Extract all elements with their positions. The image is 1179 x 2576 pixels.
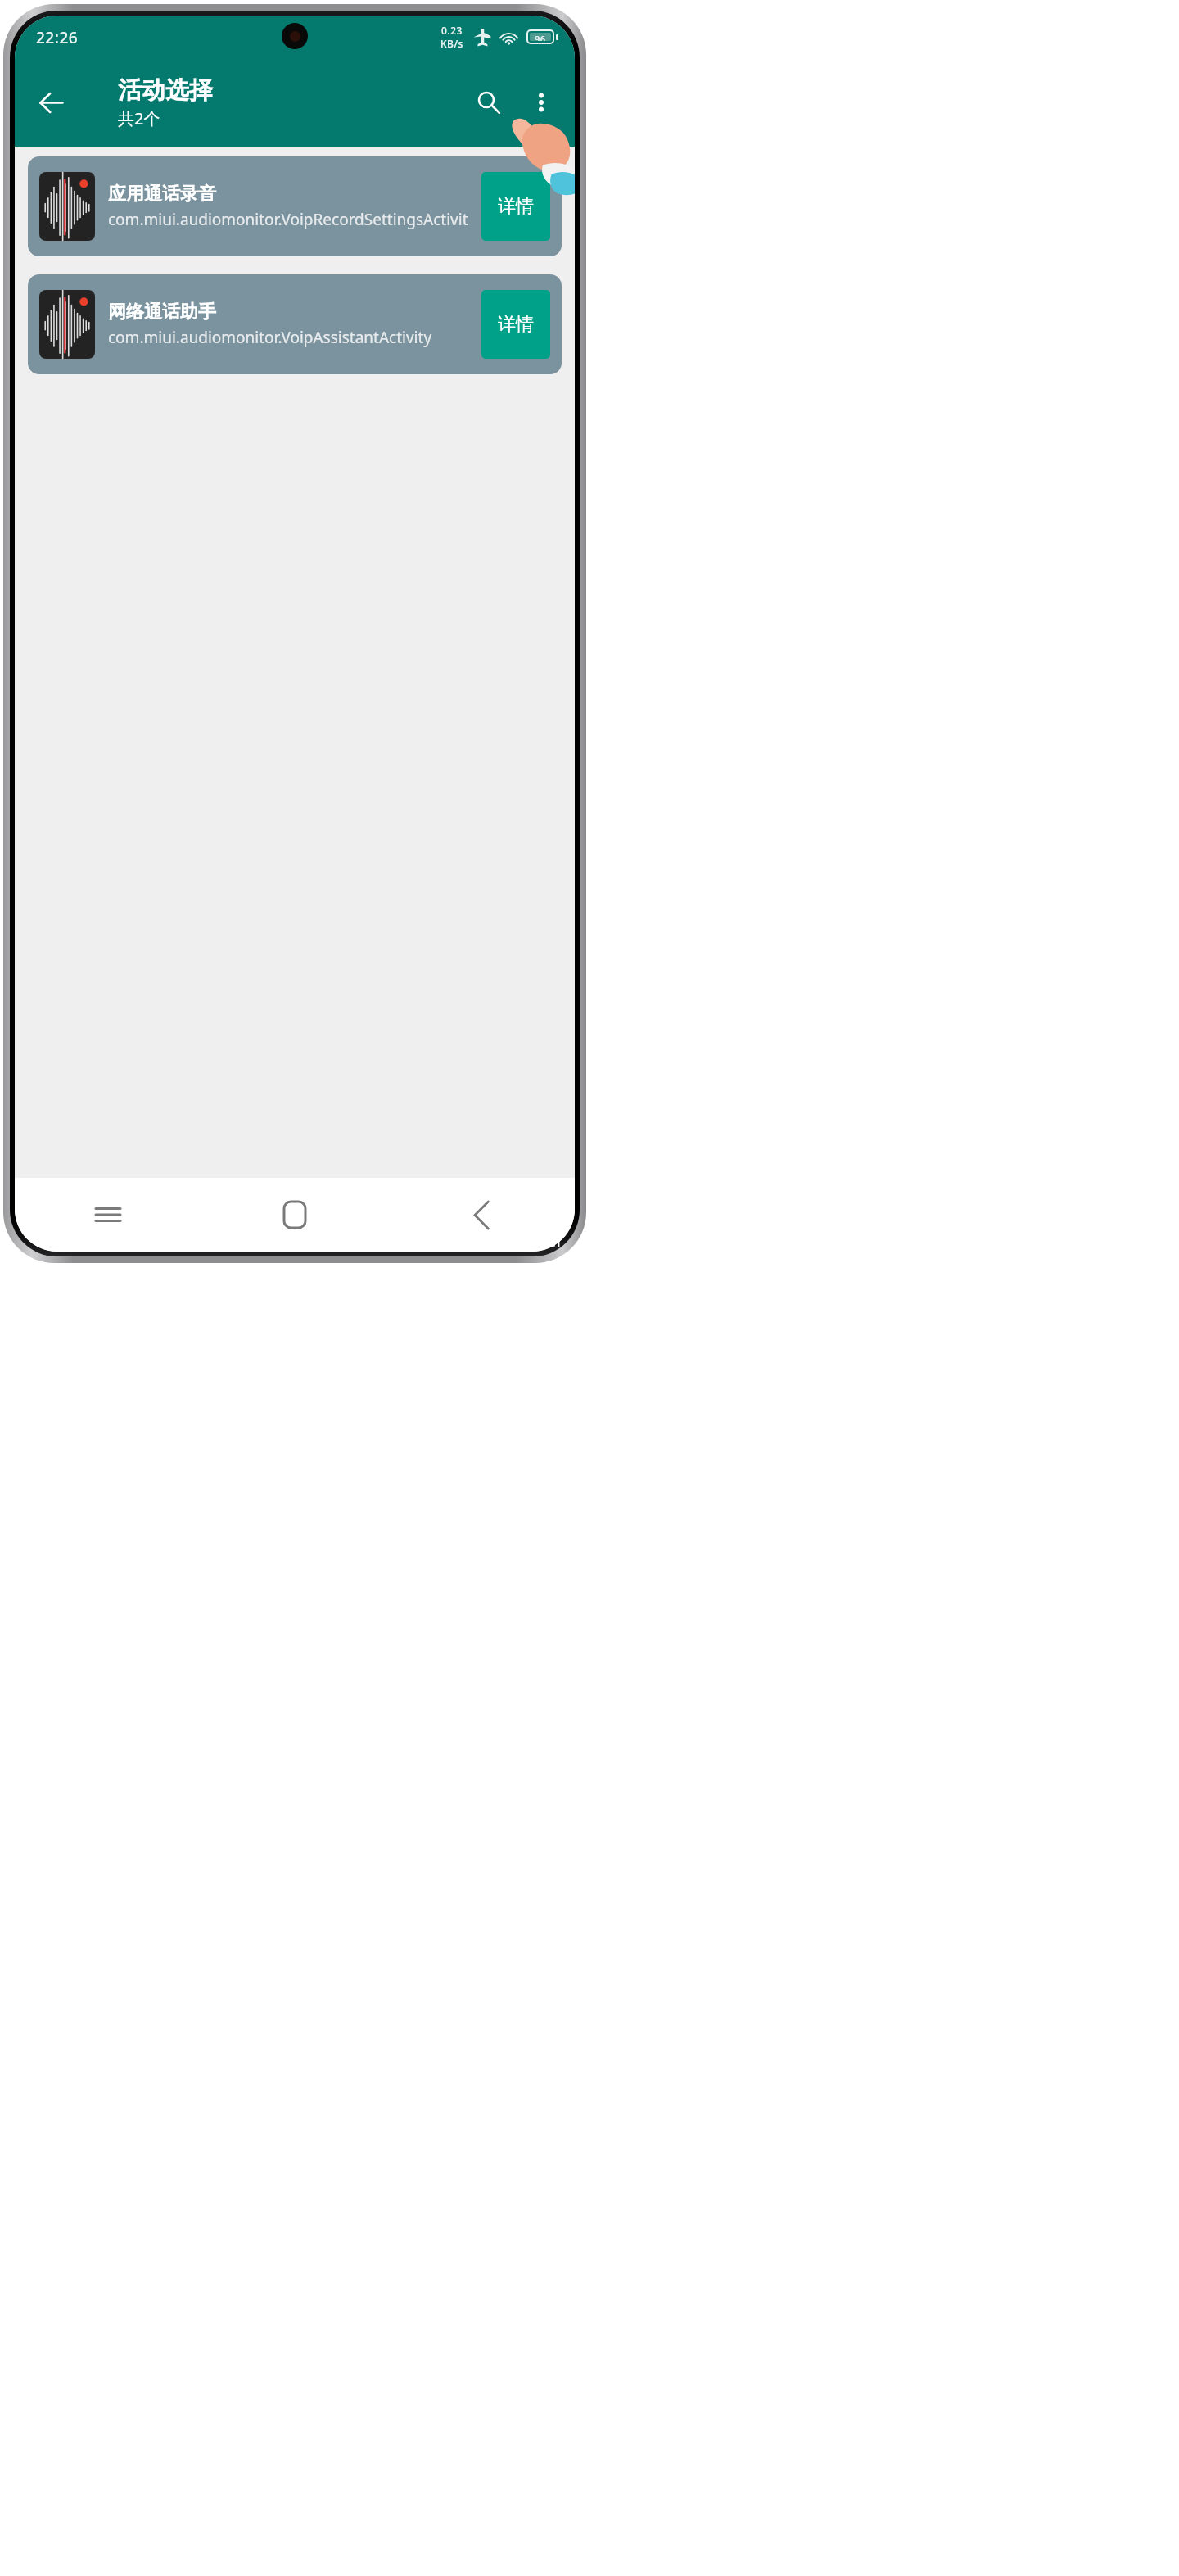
staticText: com.miui.audiomonitor.VoipRecordSettings… xyxy=(108,209,475,230)
staticText: com.miui.audiomonitor.VoipAssistantActiv… xyxy=(108,327,432,348)
button[interactable]: Search xyxy=(462,75,516,129)
staticText: 详情 xyxy=(498,313,534,336)
staticText: 活动选择 xyxy=(118,75,213,106)
staticText: 22:26 xyxy=(36,27,79,48)
button[interactable]: 详情 xyxy=(481,290,550,359)
button[interactable]: Back xyxy=(21,73,80,132)
staticText: 详情 xyxy=(498,195,534,218)
button[interactable]: Back xyxy=(388,1178,575,1252)
staticText: 共2个 xyxy=(118,107,160,129)
staticText: 应用通话录音 xyxy=(108,183,216,206)
staticText: 96 xyxy=(535,33,546,41)
button[interactable]: 应用通话录音 xyxy=(28,156,562,256)
button[interactable]: Recent apps xyxy=(15,1178,201,1252)
staticText: KB/s xyxy=(440,37,463,50)
staticText: 网络通话助手 xyxy=(108,301,216,324)
button[interactable]: Home xyxy=(201,1178,388,1252)
button[interactable]: 网络通话助手 xyxy=(28,274,562,374)
staticText: 0.23 xyxy=(441,24,463,37)
button[interactable]: More options xyxy=(516,77,567,128)
staticText: 知乎 @Flashcer xyxy=(442,1229,564,1252)
button[interactable]: 详情 xyxy=(481,172,550,241)
